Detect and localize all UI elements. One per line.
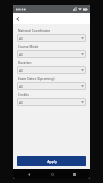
button[interactable]: Home [46,169,58,179]
staticText: All [19,100,81,105]
staticText: Credits [18,93,29,97]
button[interactable]: All [17,66,86,74]
staticText: National Coordinator [18,29,51,33]
button[interactable]: All [17,34,86,42]
button[interactable]: Apply [17,156,86,166]
staticText: All [19,52,81,57]
staticText: Apply [47,159,57,164]
button[interactable]: Back [13,14,22,23]
staticText: Duration [18,61,32,65]
staticText: Exam Dates (Upcoming) [18,77,55,81]
button[interactable]: Recent apps [68,169,80,179]
button[interactable]: All [17,98,86,106]
staticText: All [19,68,81,73]
staticText: Course Mode [18,45,39,49]
button[interactable]: Back [23,169,35,179]
staticText: All [19,84,81,89]
staticText: All [19,36,81,41]
button[interactable]: All [17,82,86,90]
button[interactable]: All [17,50,86,58]
